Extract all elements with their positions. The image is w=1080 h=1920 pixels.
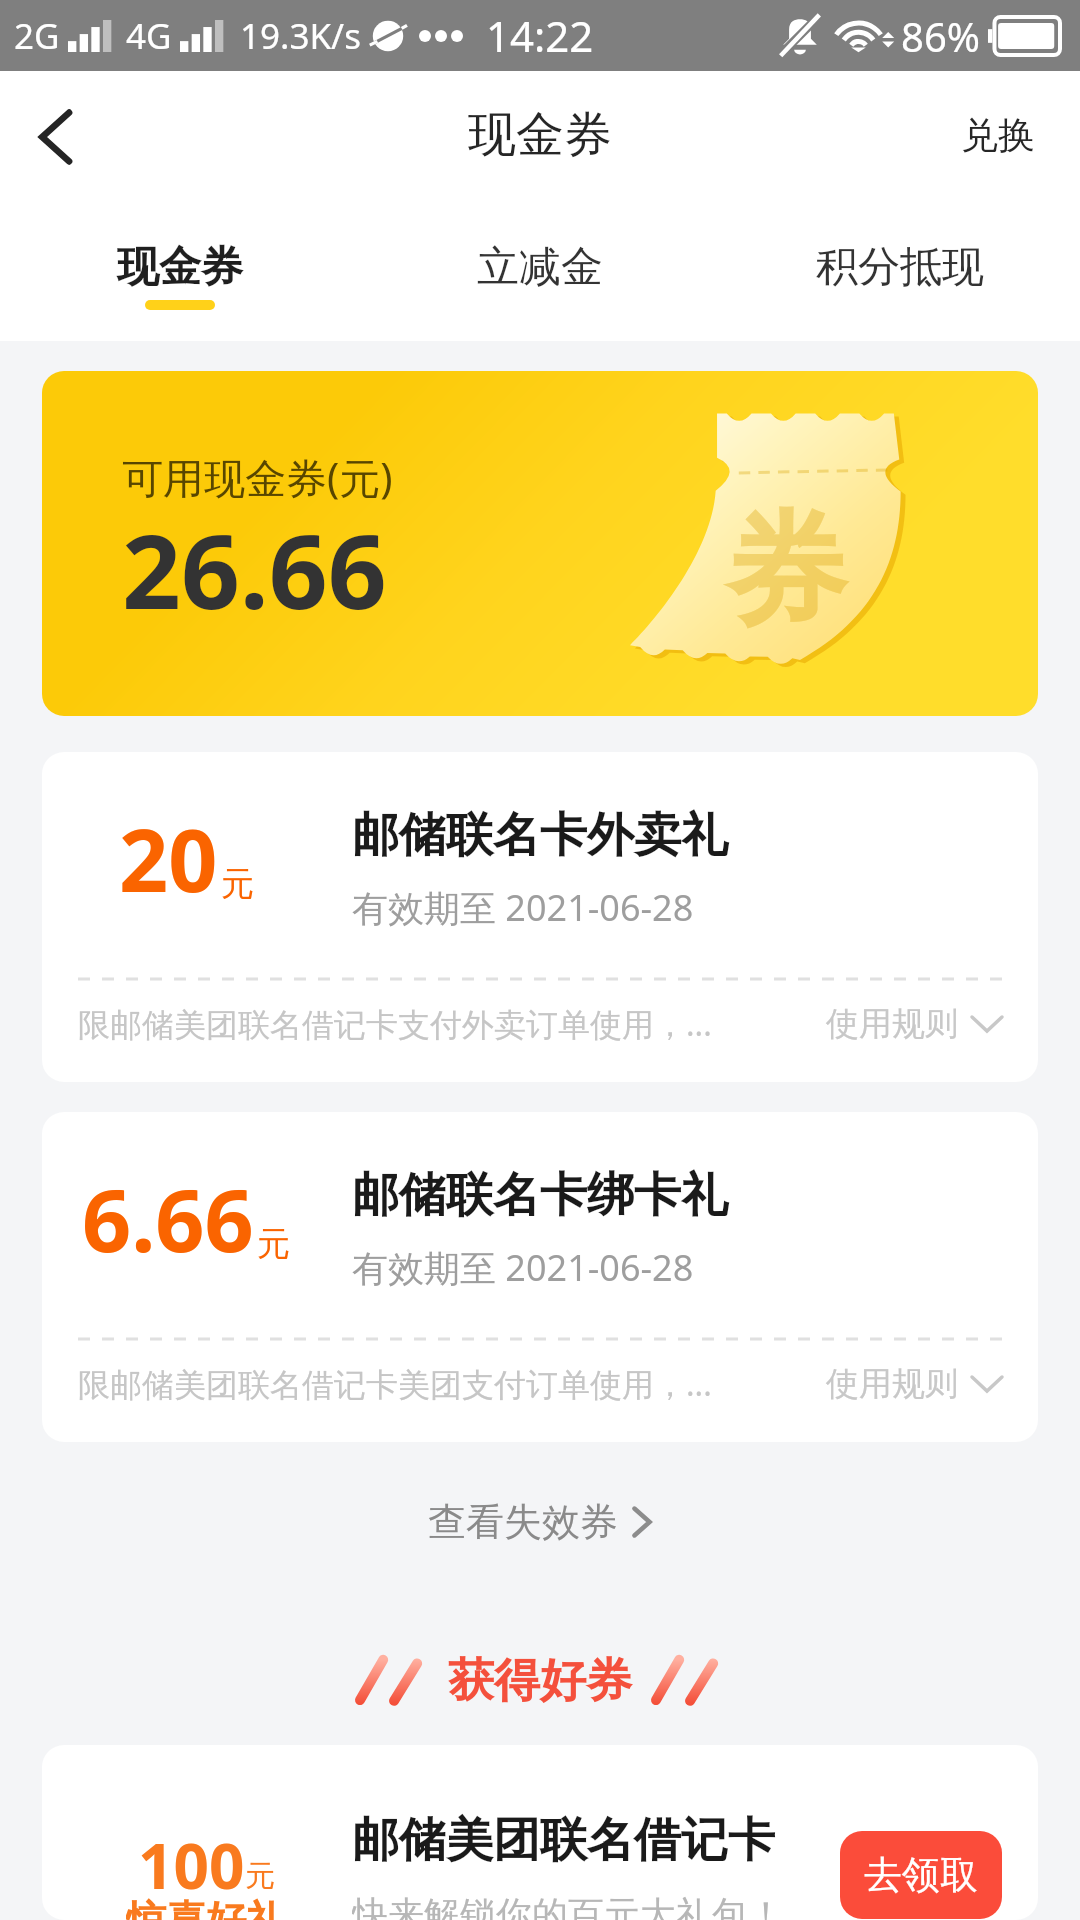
staticText: 限邮储美团联名借记卡支付外卖订单使用，...: [78, 1002, 712, 1046]
staticText: 获得好券: [448, 1652, 632, 1710]
staticText: 可用现金券(元): [122, 449, 393, 505]
staticText: 邮储联名卡绑卡礼: [352, 1166, 728, 1225]
staticText: 立减金: [477, 241, 603, 294]
staticText: 6.66: [82, 1160, 254, 1277]
button[interactable]: 现金券: [0, 223, 360, 341]
staticText: 快来解锁你的百元大礼包！: [352, 1892, 784, 1920]
staticText: 4G: [126, 12, 172, 60]
button[interactable]: 查看失效券: [414, 1484, 666, 1560]
button[interactable]: 兑换: [931, 94, 1080, 201]
staticText: 86%: [901, 9, 980, 63]
staticText: 使用规则: [826, 1003, 958, 1045]
staticText: 有效期至 2021-06-28: [352, 883, 694, 932]
button[interactable]: 立减金: [360, 223, 720, 341]
staticText: 使用规则: [826, 1363, 958, 1405]
staticText: 元: [257, 1223, 290, 1265]
staticText: 去领取: [864, 1851, 978, 1899]
staticText: 元: [245, 1857, 275, 1895]
button[interactable]: 去领取: [840, 1831, 1002, 1919]
button[interactable]: 积分抵现: [720, 223, 1080, 341]
staticText: 兑换: [961, 112, 1035, 159]
staticText: 20: [119, 800, 218, 917]
button[interactable]: 券: [42, 371, 1038, 716]
staticText: 限邮储美团联名借记卡美团支付订单使用，...: [78, 1362, 712, 1406]
staticText: 26.66: [122, 499, 387, 639]
staticText: 19.3K/s: [240, 12, 361, 60]
staticText: 积分抵现: [816, 241, 984, 294]
button[interactable]: 20: [42, 752, 1038, 1082]
button[interactable]: 使用规则: [826, 1363, 1002, 1405]
button[interactable]: 100: [42, 1745, 1038, 1920]
button[interactable]: Back: [0, 82, 110, 212]
staticText: 邮储美团联名借记卡: [352, 1811, 775, 1870]
staticText: 邮储联名卡外卖礼: [352, 806, 728, 865]
staticText: 惊喜好礼: [126, 1895, 286, 1920]
button[interactable]: 6.66: [42, 1112, 1038, 1442]
staticText: 券: [725, 495, 847, 649]
staticText: 查看失效券: [428, 1498, 618, 1546]
staticText: 2G: [14, 12, 60, 60]
button[interactable]: 使用规则: [826, 1003, 1002, 1045]
staticText: 现金券: [468, 105, 612, 165]
staticText: 100: [138, 1823, 245, 1907]
staticText: 有效期至 2021-06-28: [352, 1243, 694, 1292]
staticText: 14:22: [486, 7, 594, 64]
staticText: 现金券: [117, 241, 243, 294]
staticText: 元: [221, 863, 254, 905]
